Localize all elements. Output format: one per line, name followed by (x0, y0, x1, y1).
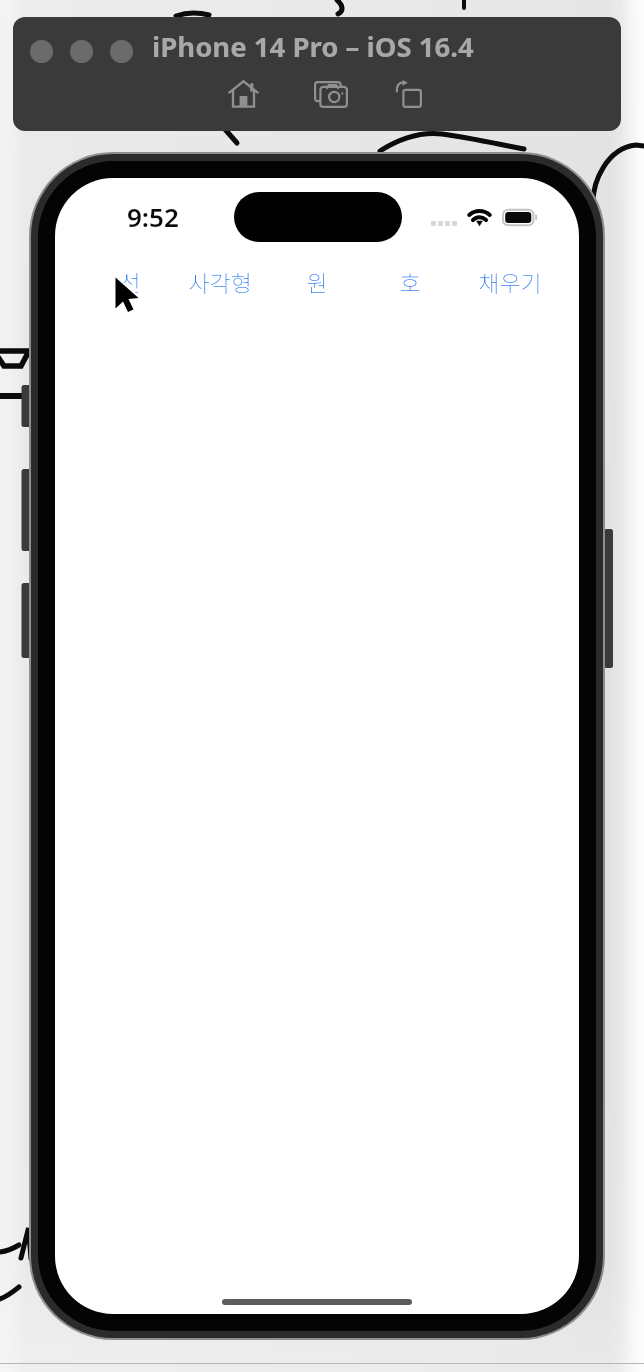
staticText: iPhone 14 Pro – iOS 16.4 (152, 28, 474, 65)
button[interactable]: 채우기 (463, 258, 557, 304)
button[interactable]: Screenshot (306, 70, 356, 118)
staticText: 선 (119, 265, 141, 298)
button[interactable]: 호 (363, 258, 457, 304)
staticText: 원 (306, 265, 328, 298)
staticText: 9:52 (127, 199, 179, 234)
button[interactable]: Home (218, 70, 268, 118)
button[interactable]: 선 (83, 258, 177, 304)
button[interactable]: Window button (110, 40, 133, 63)
staticText: 채우기 (478, 265, 542, 298)
button[interactable]: 원 (270, 258, 364, 304)
button[interactable]: 사각형 (173, 258, 267, 304)
staticText: 호 (399, 265, 421, 298)
button[interactable]: Window button (70, 40, 93, 63)
button[interactable]: Window button (30, 40, 53, 63)
button[interactable]: Rotate (384, 70, 434, 118)
staticText: 사각형 (188, 265, 252, 298)
